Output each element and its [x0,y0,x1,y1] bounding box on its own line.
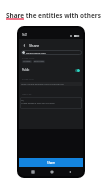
button[interactable]: Home [47,167,56,176]
button[interactable]: Anyone [22,60,32,63]
staticText: MESSAGE [22,93,32,96]
staticText: SHARE LINK [22,78,34,81]
staticText: Share [47,161,56,165]
staticText: Share the entities with others [6,11,101,20]
staticText: Public [22,68,30,72]
staticText: I have added a note for you here. [21,102,56,105]
button[interactable]: https://share.example.com/v/7ba92d1c0e [20,82,82,86]
button[interactable]: Public [19,68,83,72]
staticText: 9:41 [22,33,28,37]
button[interactable]: Share [19,158,83,167]
staticText: Restricted [34,60,44,63]
staticText: Hi, [21,98,25,101]
staticText: Anyone [23,60,31,63]
button[interactable]: Restricted [33,60,45,63]
staticText: SHARE WITH [22,57,35,60]
button[interactable]: Back [21,42,28,49]
staticText: Share [29,43,40,48]
button[interactable]: Recent apps [28,167,37,176]
button[interactable]: Back [65,167,74,176]
staticText: https://share.example.com/v/7ba92d1c0e [21,83,64,86]
staticText: alice@yahoo.com [26,51,46,54]
button[interactable]: Hi, [20,97,82,109]
button[interactable]: alice@yahoo.com [21,50,82,55]
